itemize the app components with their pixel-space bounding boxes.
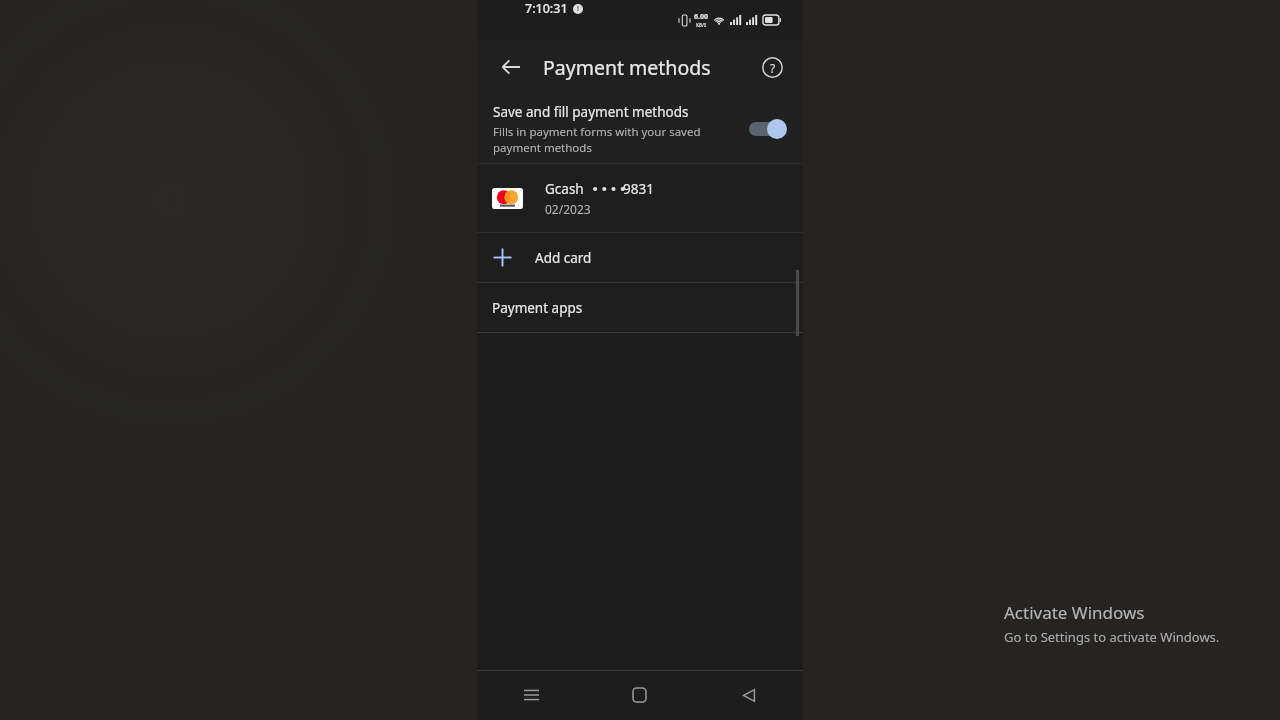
staticText: Save and fill payment methods xyxy=(493,103,689,121)
staticText: Activate Windows xyxy=(1004,601,1145,624)
button[interactable]: Save and fill payment methods toggle xyxy=(747,117,787,141)
button[interactable]: Add card xyxy=(477,233,803,282)
staticText: ? xyxy=(770,60,776,76)
staticText: 9831 xyxy=(623,180,654,198)
staticText: Payment methods xyxy=(543,54,711,81)
staticText: Gcash xyxy=(545,180,584,198)
staticText: Fills in payment forms with your saved p… xyxy=(493,124,701,155)
button[interactable]: Gcash xyxy=(477,164,803,232)
staticText: KB/S xyxy=(696,22,707,28)
button[interactable]: Back xyxy=(489,45,533,89)
staticText: ! xyxy=(577,4,579,14)
button[interactable]: Recent apps xyxy=(477,671,585,719)
staticText: 6.00 xyxy=(694,12,708,22)
staticText: Add card xyxy=(535,249,592,267)
button[interactable]: Back xyxy=(694,671,803,719)
button[interactable]: Help xyxy=(751,46,793,88)
button[interactable]: Payment apps xyxy=(477,283,803,332)
button[interactable]: Save and fill payment methods xyxy=(477,94,803,163)
staticText: Payment apps xyxy=(492,299,583,317)
staticText: Go to Settings to activate Windows. xyxy=(1004,628,1220,646)
staticText: 02/2023 xyxy=(545,201,591,217)
staticText: 7:10:31 xyxy=(525,0,568,17)
button[interactable]: Home xyxy=(585,671,694,719)
